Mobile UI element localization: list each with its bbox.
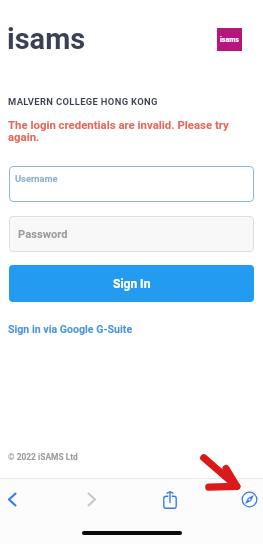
staticText: Sign In — [113, 277, 151, 291]
staticText: Username — [15, 173, 58, 184]
staticText: The login credentials are invalid. Pleas… — [8, 118, 236, 143]
button[interactable]: Username — [9, 166, 254, 202]
staticText: © 2022 iSAMS Ltd — [8, 452, 78, 462]
staticText: isams — [220, 36, 239, 44]
button[interactable]: Tabs — [233, 485, 263, 513]
staticText: isams — [7, 22, 86, 56]
staticText: MALVERN COLLEGE HONG KONG — [8, 96, 158, 107]
button[interactable]: Back — [0, 485, 28, 513]
button[interactable]: iSAMS — [217, 28, 242, 51]
button[interactable]: Password — [9, 216, 254, 252]
button[interactable]: Forward — [76, 485, 108, 513]
staticText: Password — [18, 228, 68, 241]
staticText: Sign in via Google G-Suite — [8, 323, 133, 335]
button[interactable]: Share — [154, 485, 186, 513]
button[interactable]: Sign In — [9, 265, 254, 302]
button[interactable]: Sign in via Google G-Suite — [8, 323, 133, 335]
